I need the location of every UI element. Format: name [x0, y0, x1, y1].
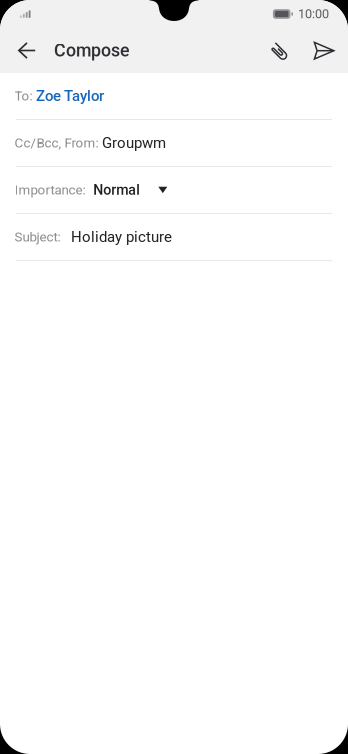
- staticText: Importance:: [14, 182, 85, 198]
- staticText: Cc/Bcc, From:: [14, 135, 98, 151]
- button[interactable]: Importance:: [0, 167, 348, 214]
- staticText: Subject:: [14, 229, 60, 245]
- staticText: 10:00: [298, 7, 329, 21]
- staticText: Compose: [54, 40, 129, 61]
- staticText: Normal: [93, 182, 140, 198]
- button[interactable]: Back: [5, 28, 49, 73]
- staticText: Zoe Taylor: [36, 87, 104, 105]
- button[interactable]: Subject:: [0, 214, 348, 261]
- button[interactable]: Cc/Bcc, From:: [0, 120, 348, 167]
- staticText: Groupwm: [102, 134, 166, 152]
- button[interactable]: To:: [0, 73, 348, 120]
- button[interactable]: Attach file: [258, 28, 302, 73]
- staticText: To:: [14, 88, 32, 104]
- button[interactable]: Send: [302, 28, 346, 73]
- staticText: Holiday picture: [71, 228, 172, 246]
